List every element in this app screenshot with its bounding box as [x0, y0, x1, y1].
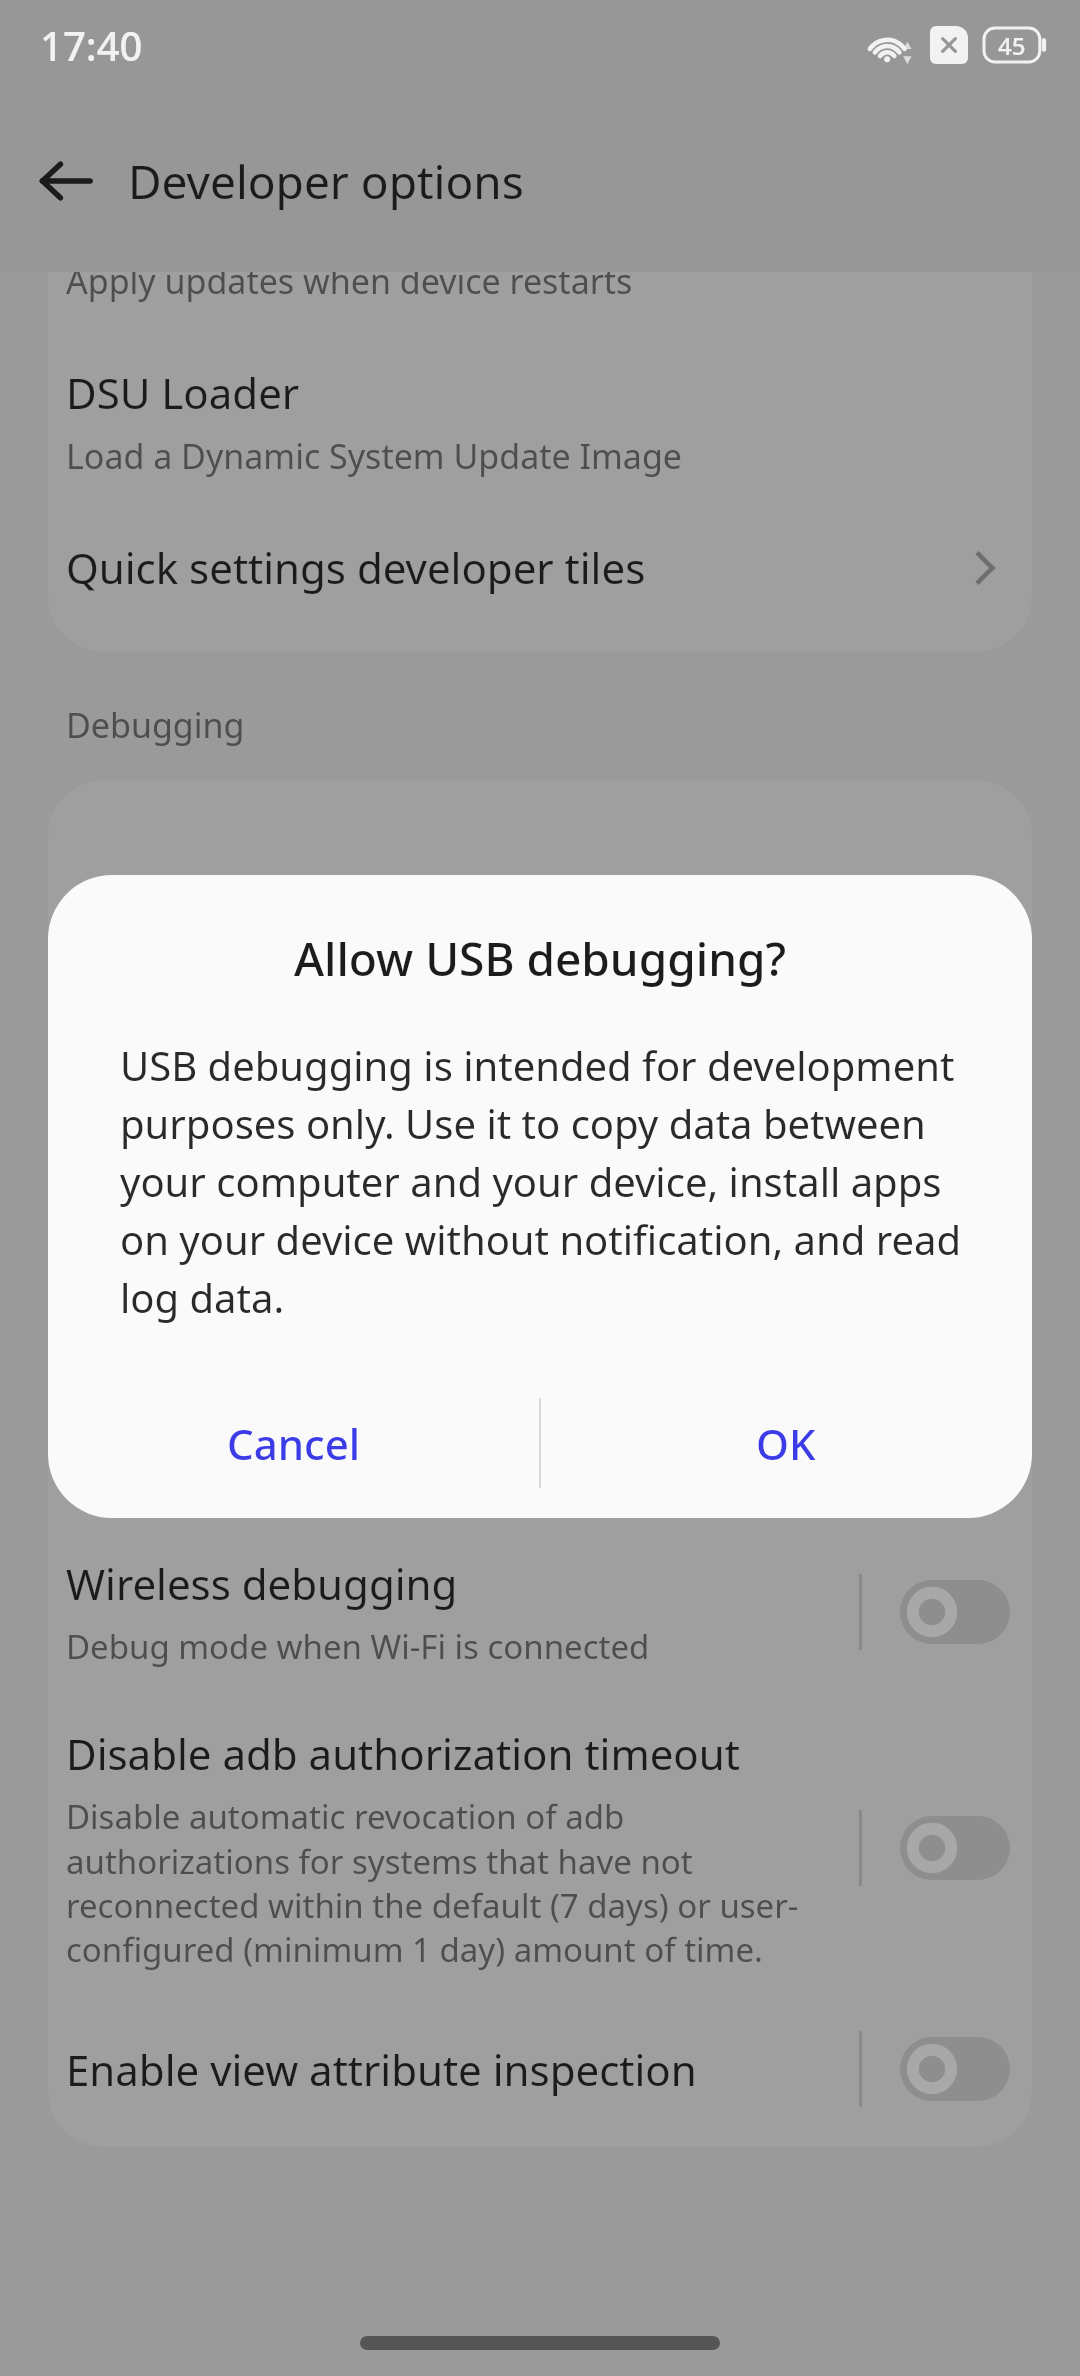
staticText: Disable automatic revocation of adb auth…	[66, 1794, 839, 1971]
button[interactable]: Revoke USB debugging authorizations	[48, 1380, 1032, 1529]
staticText: Apply updates when device restarts	[66, 272, 633, 304]
staticText: Load a Dynamic System Update Image	[66, 433, 682, 479]
button[interactable]: OK	[540, 1368, 1032, 1518]
staticText: Debug mode when Wi-Fi is connected	[66, 1624, 650, 1669]
staticText: USB debugging is intended for developmen…	[120, 1038, 976, 1324]
button[interactable]: Enable view attribute inspection	[48, 2005, 1032, 2147]
staticText: Wireless debugging	[66, 1555, 458, 1612]
button[interactable]: Cancel	[48, 1368, 540, 1518]
button[interactable]: Disable adb authorization timeout	[48, 1699, 1032, 2005]
staticText: Enable view attribute inspection	[66, 2041, 697, 2098]
staticText: DSU Loader	[66, 364, 300, 421]
staticText: 17:40	[40, 18, 143, 72]
staticText: Revoke USB debugging authorizations	[66, 1426, 823, 1483]
staticText: Allow USB debugging?	[96, 927, 984, 990]
staticText: Debugging	[66, 702, 245, 748]
button[interactable]: Back	[26, 141, 106, 221]
button[interactable]: Toggle	[900, 1580, 1010, 1644]
staticText: Quick settings developer tiles	[66, 539, 646, 596]
button[interactable]: DSU Loader	[48, 330, 1032, 505]
staticText: Cancel	[227, 1415, 361, 1472]
staticText: 45	[998, 29, 1026, 62]
button[interactable]: Quick settings developer tiles	[48, 505, 1032, 636]
button[interactable]: Wireless debugging	[48, 1529, 1032, 1699]
staticText: OK	[756, 1415, 816, 1472]
staticText: Developer options	[128, 150, 524, 213]
button[interactable]: Toggle	[900, 2037, 1010, 2101]
button[interactable]: Toggle	[900, 1816, 1010, 1880]
staticText: Disable adb authorization timeout	[66, 1725, 740, 1782]
